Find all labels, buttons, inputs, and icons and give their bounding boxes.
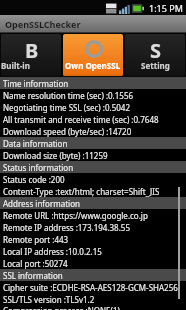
- button[interactable]: Content-Type :text/html; charset=Shift_J…: [0, 185, 186, 197]
- staticText: Content-Type :text/html; charset=Shift_J…: [3, 186, 160, 197]
- staticText: Local port :50274: [3, 258, 68, 269]
- staticText: Compression process :NONE(1): [3, 305, 120, 310]
- staticText: Data information: [3, 138, 68, 149]
- staticText: Name resolution time (sec) :0.1556: [3, 90, 134, 101]
- staticText: Own OpenSSL: [65, 60, 121, 71]
- staticText: Remote IP address :173.194.38.55: [3, 222, 130, 233]
- staticText: Local IP address :10.0.2.15: [3, 246, 102, 257]
- button[interactable]: Data information: [0, 137, 186, 149]
- staticText: Remote port :443: [3, 234, 69, 245]
- button[interactable]: Cipher suite :ECDHE-RSA-AES128-GCM-SHA25…: [0, 281, 186, 293]
- staticText: Download size (byte) :11259: [3, 150, 108, 161]
- button[interactable]: Local IP address :10.0.2.15: [0, 245, 186, 257]
- staticText: Remote URL :https://www.google.co.jp: [3, 210, 148, 221]
- button[interactable]: Local port :50274: [0, 257, 186, 269]
- button[interactable]: Compression process :NONE(1): [0, 305, 186, 310]
- button[interactable]: Status information: [0, 161, 186, 173]
- button[interactable]: SSL/TLS version :TLSv1.2: [0, 293, 186, 305]
- button[interactable]: Name resolution time (sec) :0.1556: [0, 89, 186, 101]
- staticText: Negotiating time SSL (sec) :0.5042: [3, 102, 130, 113]
- button[interactable]: Remote URL :https://www.google.co.jp: [0, 209, 186, 221]
- staticText: SSL information: [3, 270, 63, 281]
- button[interactable]: Own OpenSSL: [63, 34, 123, 76]
- button[interactable]: Negotiating time SSL (sec) :0.5042: [0, 101, 186, 113]
- staticText: Cipher suite :ECDHE-RSA-AES128-GCM-SHA25…: [3, 282, 178, 293]
- button[interactable]: Download speed (byte/sec) :14720: [0, 125, 186, 137]
- staticText: Address information: [3, 198, 80, 209]
- button[interactable]: Time information: [0, 77, 186, 89]
- other: Own OpenSSL: [85, 40, 103, 58]
- button[interactable]: Status code :200: [0, 173, 186, 185]
- button[interactable]: Download size (byte) :11259: [0, 149, 186, 161]
- staticText: All transmit and receive time (sec) :0.7…: [3, 114, 159, 125]
- button[interactable]: Address information: [0, 197, 186, 209]
- staticText: B: [25, 37, 39, 60]
- staticText: OpenSSLChecker: [5, 18, 81, 30]
- staticText: Status information: [3, 162, 74, 173]
- staticText: 1:15 PM: [149, 2, 183, 14]
- staticText: Download speed (byte/sec) :14720: [3, 126, 132, 137]
- button[interactable]: B: [1, 34, 61, 76]
- button[interactable]: All transmit and receive time (sec) :0.7…: [0, 113, 186, 125]
- staticText: SSL/TLS version :TLSv1.2: [3, 294, 95, 305]
- button[interactable]: Remote IP address :173.194.38.55: [0, 221, 186, 233]
- button[interactable]: SSL information: [0, 269, 186, 281]
- staticText: Built-in OpenSSL: [1, 60, 61, 71]
- staticText: S: [150, 37, 162, 60]
- staticText: Status code :200: [3, 174, 65, 185]
- button[interactable]: S: [125, 34, 185, 76]
- staticText: Setting: [141, 60, 170, 71]
- staticText: Time information: [3, 78, 69, 89]
- button[interactable]: Remote port :443: [0, 233, 186, 245]
